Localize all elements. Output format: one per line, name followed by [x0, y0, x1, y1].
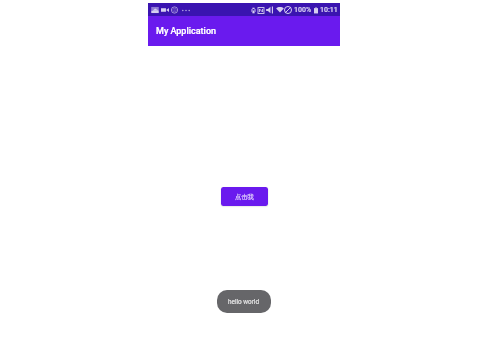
other: Wi-Fi	[276, 6, 284, 14]
other: Do not disturb	[284, 6, 292, 14]
button[interactable]: 点击我	[221, 187, 268, 206]
other: Screenshot	[151, 6, 159, 14]
other: Battery full	[314, 7, 318, 14]
other: Screen recording	[161, 6, 169, 14]
staticText: My Application	[156, 26, 217, 37]
other: More notifications	[182, 7, 190, 14]
other: Recording	[171, 6, 178, 14]
staticText: 10:11	[320, 6, 338, 14]
other: Vibrate	[251, 7, 256, 14]
other: NFC	[258, 7, 264, 14]
staticText: 100%	[294, 6, 312, 14]
staticText: 点击我	[235, 193, 254, 201]
other: Silent mode	[266, 6, 274, 14]
staticText: hello world	[228, 298, 260, 306]
